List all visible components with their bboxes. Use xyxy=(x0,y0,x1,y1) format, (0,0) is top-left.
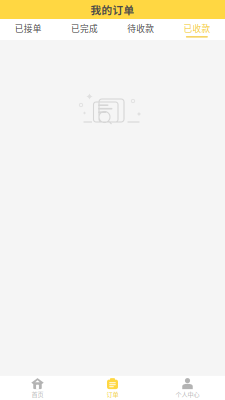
button[interactable]: 待收款 xyxy=(112,19,169,40)
staticText: 已完成 xyxy=(71,22,98,34)
button[interactable]: 首页 xyxy=(0,376,75,400)
button[interactable]: 已收款 xyxy=(169,19,225,40)
staticText: 待收款 xyxy=(127,22,154,34)
button[interactable]: 已完成 xyxy=(56,19,112,40)
staticText: 订单 xyxy=(106,390,118,398)
button[interactable]: 个人中心 xyxy=(150,376,225,400)
staticText: 首页 xyxy=(31,390,43,398)
staticText: 已接单 xyxy=(15,22,42,34)
staticText: 我的订单 xyxy=(90,2,134,17)
button[interactable]: 已接单 xyxy=(0,19,56,40)
staticText: 个人中心 xyxy=(175,390,199,398)
staticText: 已收款 xyxy=(183,22,210,34)
button[interactable]: 订单 xyxy=(75,376,150,400)
